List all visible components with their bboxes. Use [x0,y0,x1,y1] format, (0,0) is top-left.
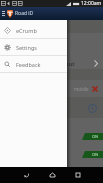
staticText: 12:00am [81,0,102,7]
button[interactable]: Home [39,167,65,183]
staticText: eCrumb [16,27,37,34]
button[interactable]: Feedback [0,56,67,72]
button[interactable]: Open navigation drawer [0,7,6,20]
staticText: ON [92,152,99,157]
staticText: Road iD [15,10,34,17]
staticText: Settings [16,44,37,51]
button[interactable]: ON [0,151,103,158]
button[interactable]: Back [13,167,39,183]
button[interactable]: Settings [0,39,67,55]
button[interactable]: Remove [91,85,98,92]
button[interactable]: ON [0,133,103,140]
button[interactable]: Log out [0,57,103,70]
button[interactable]: eCrumb [0,22,67,38]
staticText: mobile [74,86,89,92]
staticText: Feedback [16,61,41,68]
button[interactable]: Info [88,104,97,113]
button[interactable]: Recent apps [65,167,91,183]
staticText: Log out [53,60,75,68]
staticText: ON [92,134,99,139]
